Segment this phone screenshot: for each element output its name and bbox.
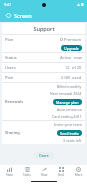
button[interactable]: App logo	[5, 12, 12, 19]
button[interactable]: More	[70, 165, 87, 179]
staticText: Users	[5, 65, 16, 70]
button[interactable]: Flow	[36, 165, 53, 179]
staticText: 12	[65, 65, 70, 70]
staticText: Upgrade	[64, 46, 79, 51]
staticText: Sharing	[5, 130, 20, 135]
staticText: Stats	[6, 173, 13, 177]
staticText: Screen	[14, 12, 32, 19]
staticText: of 20	[72, 65, 82, 70]
staticText: Done	[39, 153, 49, 158]
staticText: Premium	[64, 37, 82, 42]
staticText: Plan	[5, 75, 14, 80]
staticText: Tasks	[23, 173, 31, 177]
staticText: now	[74, 55, 82, 60]
staticText: More	[75, 173, 83, 177]
staticText: Auto-renew on	[57, 107, 82, 112]
staticText: Flow	[41, 173, 48, 177]
button[interactable]: Grid	[53, 165, 70, 179]
button[interactable]: Plan	[2, 73, 85, 82]
staticText: Billed monthly	[57, 84, 82, 89]
staticText: Grid	[58, 173, 65, 177]
button[interactable]: Send invite	[57, 130, 82, 136]
staticText: Plan	[5, 37, 14, 42]
button[interactable]: Stats	[0, 165, 18, 179]
staticText: Invite your team	[54, 122, 82, 127]
button[interactable]: Done	[34, 152, 54, 159]
button[interactable]: Plan	[2, 35, 85, 44]
staticText: used	[72, 75, 82, 80]
staticText: Renewals	[5, 99, 24, 104]
staticText: Manage plan	[56, 100, 79, 105]
staticText: 9:41	[4, 2, 11, 7]
staticText: Active	[60, 55, 72, 60]
button[interactable]: Tasks	[18, 165, 36, 179]
staticText: Send invite	[60, 131, 79, 136]
button[interactable]: Manage plan	[53, 99, 82, 105]
staticText: Status	[5, 55, 17, 60]
staticText: Next renewal 2024	[50, 91, 82, 96]
button[interactable]: Users	[2, 63, 85, 72]
staticText: Card ending 4411	[52, 114, 82, 119]
staticText: Support	[33, 25, 55, 32]
staticText: 2 GB	[61, 75, 70, 80]
button[interactable]: Status	[2, 53, 85, 62]
button[interactable]: Upgrade	[61, 45, 82, 51]
staticText: 3 seats left	[63, 138, 82, 143]
